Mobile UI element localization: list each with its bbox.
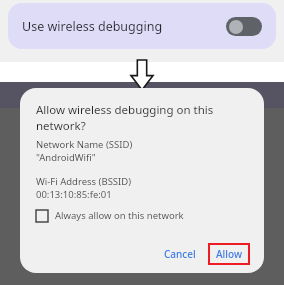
staticText: Allow [216, 247, 242, 261]
button[interactable]: Allow [208, 243, 250, 265]
staticText: Cancel [164, 247, 196, 261]
staticText: Network Name (SSID) [36, 138, 133, 151]
button[interactable]: Always allow on this network [36, 208, 184, 223]
staticText: "AndroidWifi" [36, 151, 96, 164]
staticText: Allow wireless debugging on this network… [36, 102, 214, 133]
staticText: Wi-Fi Address (BSSID) [36, 175, 132, 188]
staticText: Use wireless debugging [22, 18, 163, 35]
button[interactable]: Cancel [158, 243, 202, 265]
button[interactable]: Toggle wireless debugging [226, 17, 262, 36]
staticText: Always allow on this network [55, 209, 184, 222]
staticText: 00:13:10:85:fe:01 [36, 188, 112, 201]
button[interactable]: Use wireless debugging [8, 3, 276, 49]
